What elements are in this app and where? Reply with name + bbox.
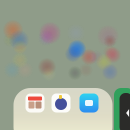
button[interactable]: Photos — [25, 93, 44, 112]
button[interactable]: Back — [119, 93, 130, 130]
button[interactable]: Browser — [51, 93, 70, 112]
button[interactable]: Messages — [79, 93, 98, 112]
